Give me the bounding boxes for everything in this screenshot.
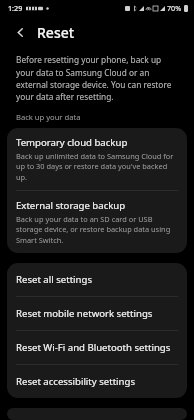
staticText: Reset mobile network settings	[16, 307, 153, 320]
button[interactable]: External storage backup	[7, 191, 187, 253]
staticText: Before resetting your phone, back up you…	[16, 54, 178, 102]
button[interactable]: Reset Wi-Fi and Bluetooth settings	[7, 331, 187, 364]
button[interactable]: Reset accessibility settings	[7, 365, 187, 398]
staticText: Reset all settings	[16, 273, 93, 286]
staticText: Temporary cloud backup	[16, 136, 128, 149]
staticText: Back up your data to an SD card or USB s…	[16, 214, 176, 245]
button[interactable]: Reset all settings	[7, 263, 187, 296]
staticText: Reset accessibility settings	[16, 375, 136, 388]
staticText: Reset Wi-Fi and Bluetooth settings	[16, 341, 171, 354]
staticText: 70%	[167, 3, 182, 13]
button[interactable]: Temporary cloud backup	[7, 128, 187, 190]
staticText: 1:29	[8, 3, 23, 13]
button[interactable]: Back	[9, 21, 31, 43]
staticText: Reset	[37, 23, 75, 42]
staticText: Back up unlimited data to Samsung Cloud …	[16, 151, 176, 182]
staticText: External storage backup	[16, 199, 126, 212]
staticText: Back up your data	[16, 112, 81, 122]
button[interactable]: Reset mobile network settings	[7, 297, 187, 330]
